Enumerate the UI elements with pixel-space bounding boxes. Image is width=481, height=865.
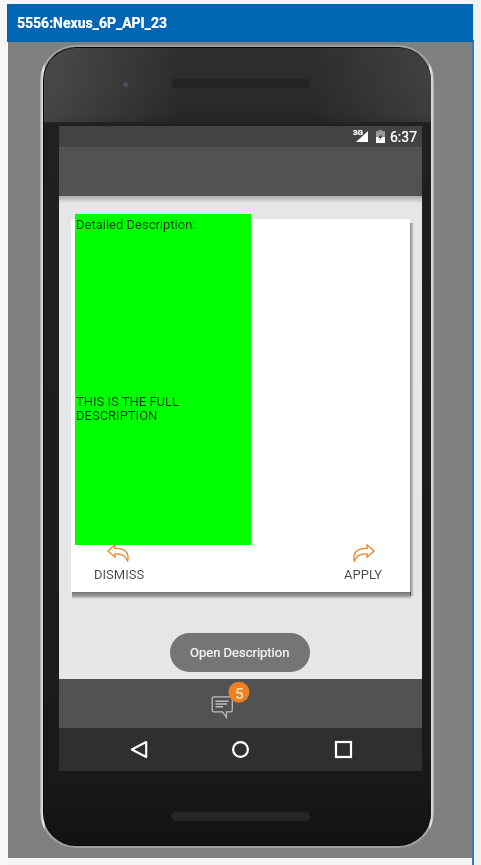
staticText: APPLY (344, 567, 383, 582)
staticText: 5556:Nexus_6P_API_23 (17, 15, 167, 31)
button[interactable]: Back (111, 728, 167, 771)
staticText: 6:37 (390, 129, 417, 145)
button[interactable]: Open Description (170, 633, 310, 672)
button[interactable]: Messages (207, 679, 251, 725)
staticText: Detailed Description: (76, 217, 196, 232)
button[interactable]: Recents (315, 728, 371, 771)
staticText: Open Description (190, 645, 290, 660)
button[interactable]: DISMISS (89, 544, 149, 582)
staticText: 5 (235, 685, 244, 703)
button[interactable]: APPLY (333, 544, 393, 582)
button[interactable]: Home (212, 728, 268, 771)
staticText: DISMISS (94, 567, 145, 582)
staticText: THIS IS THE FULL DESCRIPTION (76, 394, 179, 424)
staticText: 3G (353, 128, 364, 137)
